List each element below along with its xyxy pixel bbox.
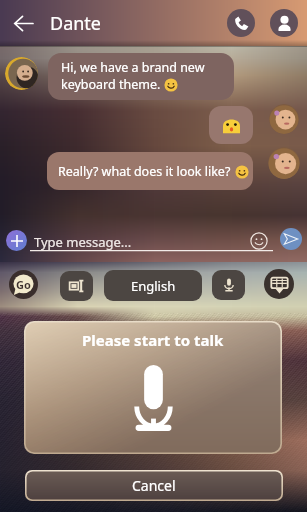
button[interactable]: Voice input	[212, 270, 245, 300]
button[interactable]: English	[104, 270, 202, 301]
staticText: Dante	[50, 11, 102, 36]
staticText: keyboard theme.	[61, 76, 161, 93]
button[interactable]: Theme	[60, 271, 93, 301]
button[interactable]: Back	[0, 0, 46, 46]
button[interactable]: Hi, we have a brand new	[48, 53, 234, 100]
button[interactable]: Hide keyboard	[264, 269, 294, 299]
button[interactable]: Cancel	[25, 470, 283, 501]
button[interactable]: Go Keyboard	[9, 270, 38, 299]
button[interactable]	[209, 106, 253, 144]
button[interactable]: Really? what does it look like?	[47, 152, 253, 190]
staticText: Cancel	[132, 476, 176, 495]
button[interactable]: Emoji	[249, 231, 268, 250]
button[interactable]: Send	[280, 228, 302, 250]
staticText: Go	[16, 277, 31, 292]
staticText: Type message...	[34, 233, 132, 251]
staticText: Please start to talk	[82, 330, 224, 350]
button[interactable]: Call	[227, 9, 255, 37]
staticText: English	[131, 277, 176, 295]
staticText: Really? what does it look like?	[58, 163, 231, 180]
button[interactable]: Add	[6, 230, 27, 251]
button[interactable]: Profile	[270, 9, 298, 37]
staticText: Hi, we have a brand new	[61, 59, 205, 76]
